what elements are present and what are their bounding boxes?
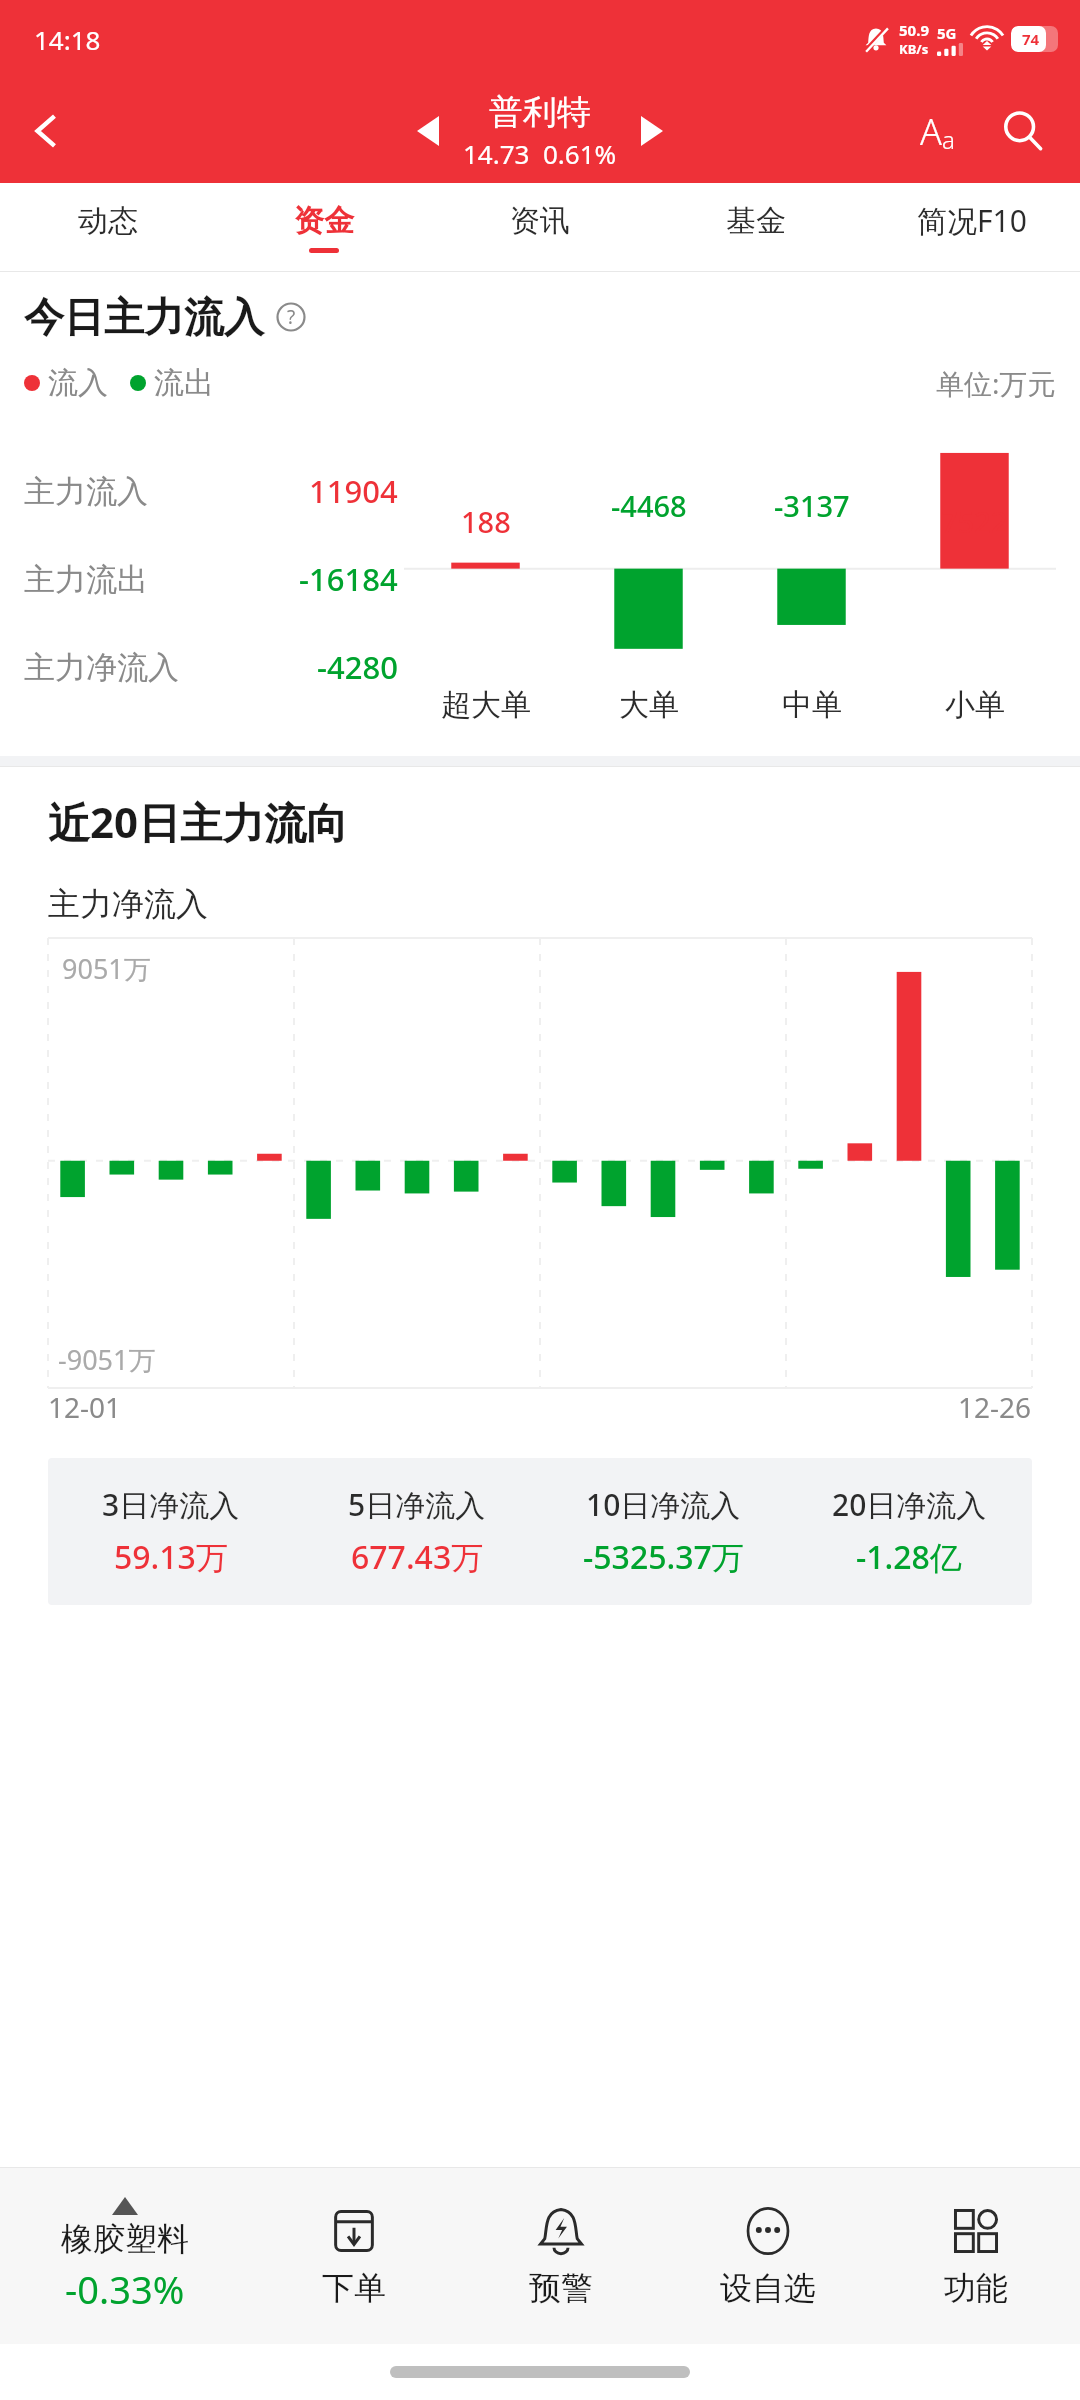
button[interactable]: Font size — [894, 88, 980, 174]
button[interactable]: 动态 — [0, 183, 216, 271]
staticText: -4280 — [317, 646, 398, 688]
staticText: -16184 — [299, 558, 398, 600]
staticText: -0.33% — [65, 2263, 185, 2315]
button[interactable]: Back — [0, 84, 94, 178]
staticText: 主力净流入 — [24, 648, 179, 687]
staticText: 资金 — [294, 202, 354, 240]
staticText: 677.43万 — [351, 1535, 484, 1579]
button[interactable]: 5日净流入 — [294, 1484, 540, 1579]
staticText: -5325.37万 — [583, 1535, 744, 1579]
button[interactable]: 资讯 — [432, 183, 648, 271]
staticText: 小单 — [945, 686, 1005, 724]
staticText: 5G — [937, 23, 957, 43]
staticText: 主力流出 — [24, 560, 148, 599]
staticText: -1.28亿 — [856, 1535, 962, 1579]
staticText: a — [942, 123, 955, 156]
staticText: 资讯 — [510, 202, 570, 240]
button[interactable]: Next stock — [623, 102, 681, 160]
staticText: ? — [287, 304, 296, 330]
staticText: 主力流入 — [24, 472, 148, 511]
staticText: -9051万 — [58, 1341, 156, 1378]
staticText: 流出 — [154, 364, 214, 402]
button[interactable]: Help — [276, 302, 306, 332]
staticText: 大单 — [619, 686, 679, 724]
staticText: -3137 — [774, 486, 850, 525]
staticText: 59.13万 — [114, 1535, 228, 1579]
staticText: 流入 — [48, 364, 108, 402]
staticText: 普利特 — [489, 91, 591, 134]
staticText: 今日主力流入 — [24, 292, 264, 342]
button[interactable]: 资金 — [216, 183, 432, 271]
staticText: 20日净流入 — [832, 1484, 987, 1525]
staticText: 功能 — [944, 2268, 1008, 2308]
button[interactable]: 下单 — [250, 2168, 457, 2344]
staticText: 超大单 — [441, 686, 531, 724]
staticText: 5日净流入 — [348, 1484, 486, 1525]
staticText: 14.73 0.61% — [463, 136, 617, 171]
button[interactable]: 近20日主力流向 — [48, 793, 349, 850]
staticText: 12-26 — [958, 1388, 1032, 1426]
button[interactable]: Search — [980, 88, 1066, 174]
staticText: 11904 — [309, 470, 398, 512]
staticText: 预警 — [529, 2268, 593, 2308]
button[interactable]: 20日净流入 — [786, 1484, 1032, 1579]
staticText: 10日净流入 — [586, 1484, 741, 1525]
staticText: 基金 — [726, 202, 786, 240]
staticText: 单位:万元 — [936, 364, 1056, 402]
staticText: 动态 — [78, 202, 138, 240]
staticText: 简况F10 — [917, 200, 1027, 241]
button[interactable]: 橡胶塑料 — [0, 2168, 250, 2344]
button[interactable]: 10日净流入 — [540, 1484, 786, 1579]
staticText: 50.9 — [899, 20, 929, 40]
button[interactable]: 设自选 — [664, 2168, 872, 2344]
staticText: -4468 — [611, 486, 687, 525]
staticText: KB/s — [899, 40, 929, 58]
staticText: A — [920, 107, 942, 156]
staticText: 橡胶塑料 — [61, 2219, 189, 2259]
button[interactable]: 简况F10 — [864, 183, 1080, 271]
staticText: 14:18 — [34, 22, 101, 57]
staticText: 设自选 — [720, 2268, 816, 2308]
button[interactable]: 3日净流入 — [48, 1484, 294, 1579]
button[interactable]: 预警 — [457, 2168, 664, 2344]
staticText: 主力净流入 — [48, 884, 208, 924]
button[interactable]: 功能 — [872, 2168, 1080, 2344]
staticText: 3日净流入 — [102, 1484, 240, 1525]
button[interactable]: Previous stock — [399, 102, 457, 160]
button[interactable]: 基金 — [648, 183, 864, 271]
staticText: 12-01 — [48, 1388, 122, 1426]
staticText: 188 — [461, 502, 511, 541]
staticText: 下单 — [322, 2268, 386, 2308]
button[interactable]: 普利特 — [457, 91, 623, 171]
staticText: 中单 — [782, 686, 842, 724]
staticText: 9051万 — [62, 950, 151, 987]
staticText: 74 — [1022, 29, 1040, 49]
